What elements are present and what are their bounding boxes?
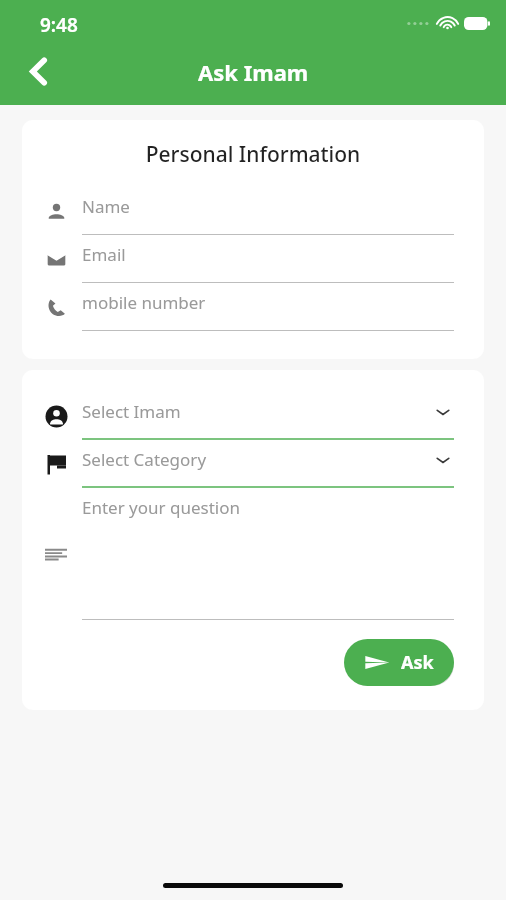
staticText: Select Imam: [82, 400, 181, 423]
button[interactable]: Ask: [344, 639, 454, 686]
button[interactable]: Select Imam: [30, 392, 454, 440]
button[interactable]: Name: [30, 187, 454, 235]
staticText: Name: [82, 195, 130, 218]
staticText: Ask Imam: [198, 57, 309, 87]
button[interactable]: Back: [14, 47, 62, 95]
button[interactable]: mobile number: [30, 283, 454, 331]
staticText: Select Category: [82, 448, 207, 471]
button[interactable]: Select Category: [30, 440, 454, 488]
staticText: Personal Information: [22, 140, 484, 169]
button[interactable]: Enter your question: [30, 488, 454, 620]
button[interactable]: Email: [30, 235, 454, 283]
staticText: Email: [82, 243, 126, 266]
staticText: 9:48: [40, 12, 78, 38]
staticText: Enter your question: [82, 496, 241, 519]
staticText: Ask: [401, 650, 434, 675]
staticText: mobile number: [82, 291, 206, 314]
